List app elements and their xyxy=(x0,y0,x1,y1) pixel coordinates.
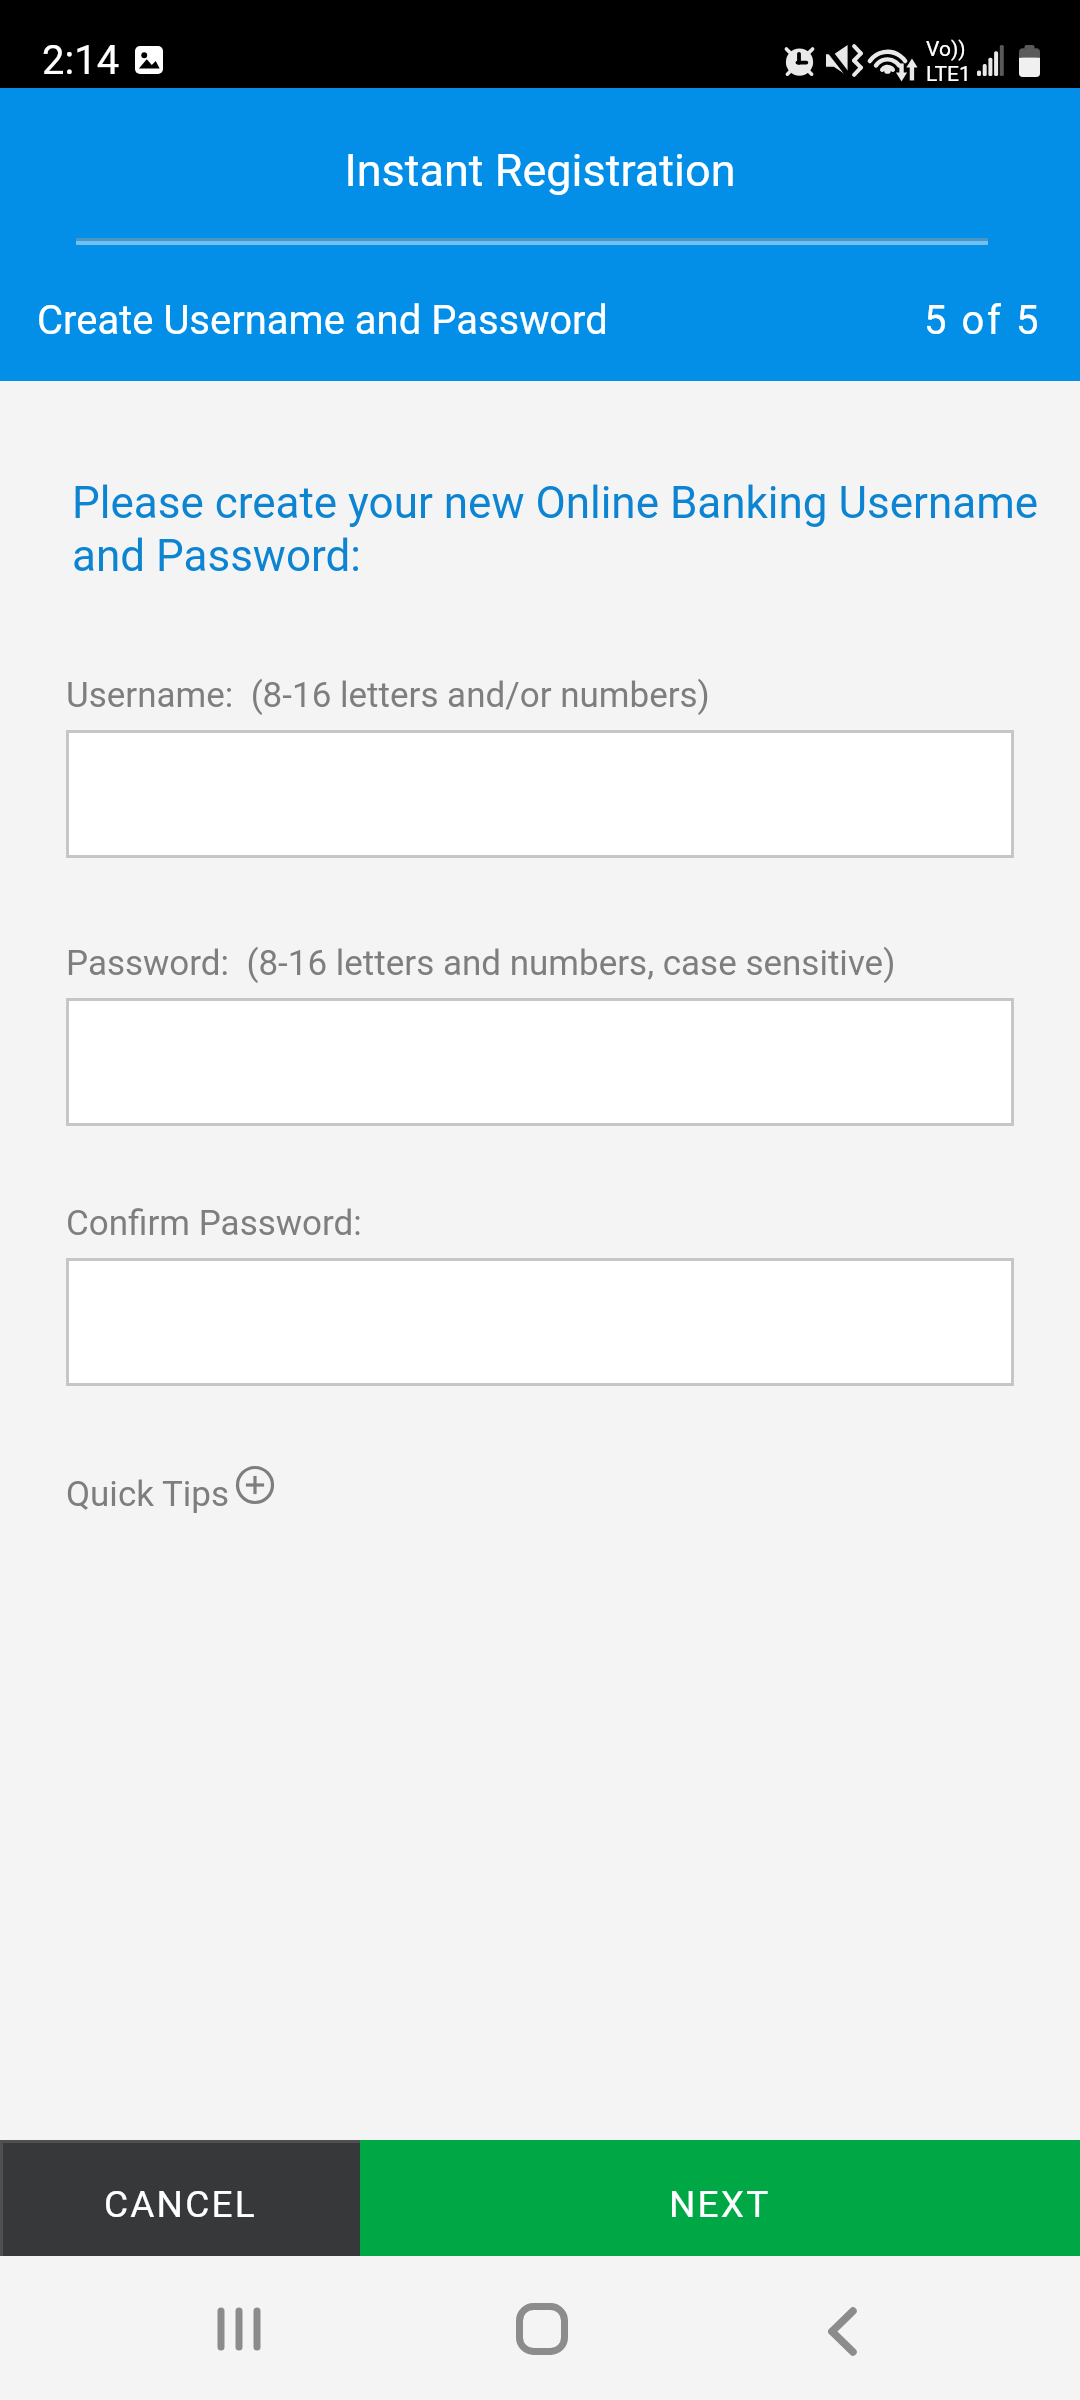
button[interactable]: Confirm Password: xyxy=(66,1258,1014,1386)
button[interactable]: Password: (8-16 letters and numbers, cas… xyxy=(66,998,1014,1126)
staticText: Create Username and Password xyxy=(37,297,608,344)
button[interactable]: Recent apps xyxy=(177,2270,297,2390)
staticText: LTE1 xyxy=(926,62,971,87)
button[interactable]: Back xyxy=(782,2270,902,2390)
staticText: Instant Registration xyxy=(0,144,1080,197)
button[interactable]: Username: (8-16 letters and/or numbers) xyxy=(66,730,1014,858)
button[interactable]: Home xyxy=(480,2270,600,2390)
staticText: CANCEL xyxy=(104,2183,257,2226)
staticText: 2:14 xyxy=(42,37,120,84)
staticText: Vo)) xyxy=(926,37,966,62)
staticText: Username: (8-16 letters and/or numbers) xyxy=(66,675,710,716)
button[interactable]: CANCEL xyxy=(0,2140,360,2256)
button[interactable]: Quick Tips xyxy=(56,1461,286,1525)
staticText: NEXT xyxy=(669,2183,771,2226)
button[interactable]: NEXT xyxy=(360,2140,1080,2256)
staticText: Confirm Password: xyxy=(66,1203,362,1244)
staticText: Quick Tips xyxy=(66,1474,230,1515)
staticText: Password: (8-16 letters and numbers, cas… xyxy=(66,943,896,984)
staticText: Please create your new Online Banking Us… xyxy=(72,477,1052,582)
staticText: 5 of 5 xyxy=(924,297,1042,344)
